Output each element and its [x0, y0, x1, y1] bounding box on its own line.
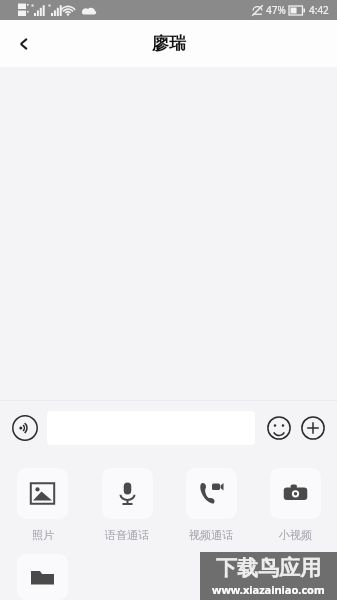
staticText: 下载鸟应用 — [216, 555, 321, 581]
button[interactable]: 照片 — [0, 468, 85, 542]
staticText: 廖瑞 — [152, 33, 186, 54]
button[interactable]: 文件 — [0, 554, 85, 600]
staticText: 4:42 — [309, 3, 329, 17]
button[interactable]: 语音通话 — [85, 468, 169, 542]
staticText: 语音通话 — [105, 528, 149, 542]
staticText: 小视频 — [279, 528, 312, 542]
button[interactable]: Voice input — [8, 411, 42, 445]
staticText: 照片 — [32, 528, 54, 542]
button[interactable]: Back — [0, 20, 48, 67]
staticText: www.xiazainiao.com — [212, 582, 325, 597]
button[interactable]: Emoji — [263, 412, 295, 444]
button[interactable]: 小视频 — [253, 468, 337, 542]
staticText: 视频通话 — [189, 528, 233, 542]
staticText: 47% — [266, 3, 286, 17]
button[interactable]: More options — [297, 412, 329, 444]
button[interactable]: 视频通话 — [169, 468, 253, 542]
